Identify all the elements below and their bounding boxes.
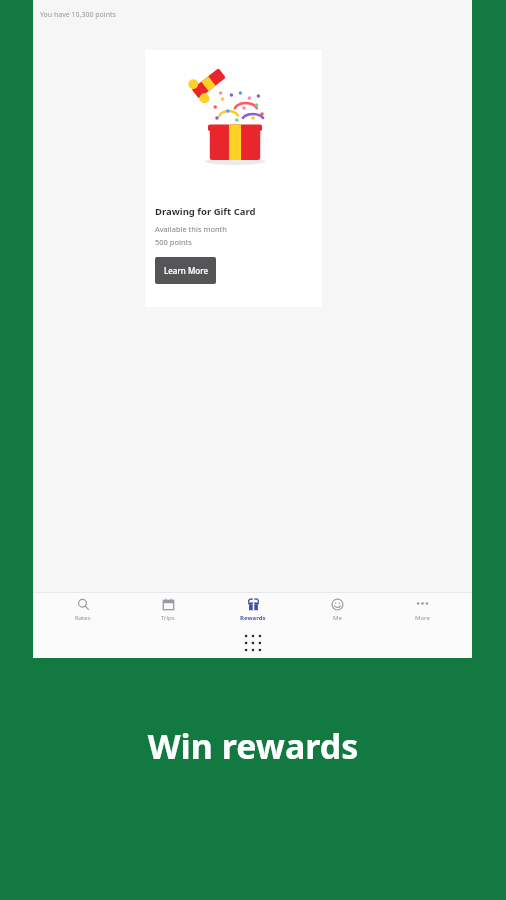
staticText: Drawing for Gift Card — [155, 205, 256, 218]
button[interactable]: Learn More — [155, 257, 216, 284]
button[interactable]: Drawing for Gift Card — [145, 50, 322, 307]
button[interactable]: App drawer — [242, 632, 264, 654]
button[interactable]: Rewards — [218, 598, 288, 622]
button[interactable]: Me — [302, 598, 372, 622]
staticText: 500 points — [155, 237, 192, 247]
staticText: Me — [333, 614, 342, 622]
staticText: Learn More — [164, 265, 208, 276]
staticText: Trips — [161, 614, 175, 622]
staticText: Rewards — [240, 614, 266, 622]
button[interactable]: Rates — [48, 598, 118, 622]
button[interactable]: Trips — [133, 598, 203, 622]
staticText: Win rewards — [0, 723, 506, 769]
staticText: Rates — [75, 614, 91, 622]
staticText: Available this month — [155, 224, 227, 234]
button[interactable]: More — [387, 598, 457, 622]
staticText: You have 10,300 points — [40, 10, 116, 20]
staticText: More — [415, 614, 430, 622]
